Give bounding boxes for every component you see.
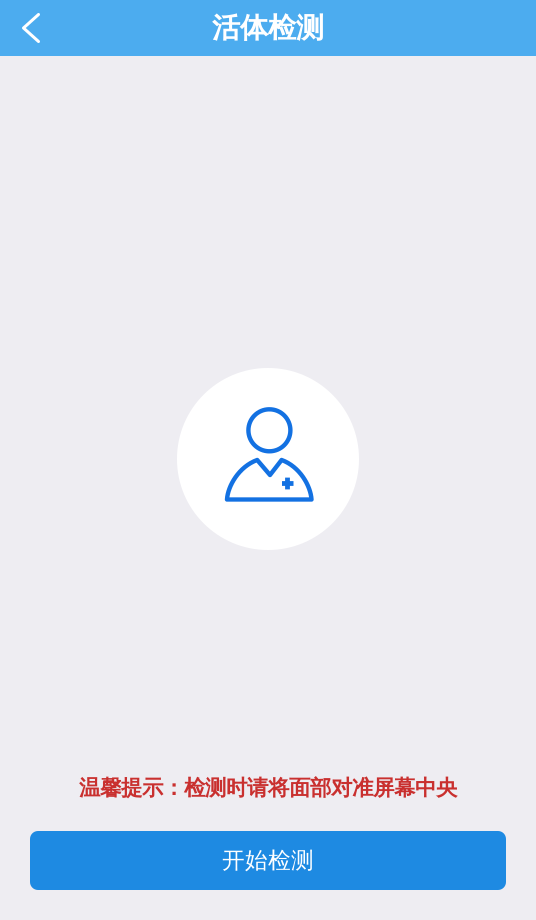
button[interactable]: Back	[0, 0, 62, 56]
staticText: 温馨提示：检测时请将面部对准屏幕中央	[79, 775, 457, 801]
button[interactable]: 开始检测	[30, 831, 506, 890]
staticText: 开始检测	[222, 847, 314, 874]
staticText: 活体检测	[212, 11, 324, 45]
